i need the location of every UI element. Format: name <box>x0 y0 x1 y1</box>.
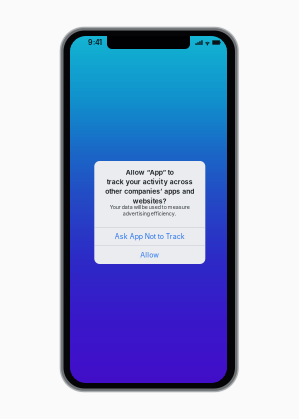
staticText: websites? <box>133 197 167 205</box>
staticText: Allow <box>140 251 159 259</box>
staticText: advertising efficiency. <box>123 210 177 217</box>
staticText: track your activity across <box>107 178 193 186</box>
button[interactable]: Ask App Not to Track <box>94 227 205 245</box>
staticText: other companies’ apps and <box>105 187 194 195</box>
staticText: Your data will be used to measure <box>110 204 190 210</box>
button[interactable]: Allow <box>94 246 205 264</box>
staticText: 9:41 <box>88 38 102 47</box>
staticText: Ask App Not to Track <box>115 232 185 241</box>
staticText: Allow “App” to <box>126 168 174 176</box>
